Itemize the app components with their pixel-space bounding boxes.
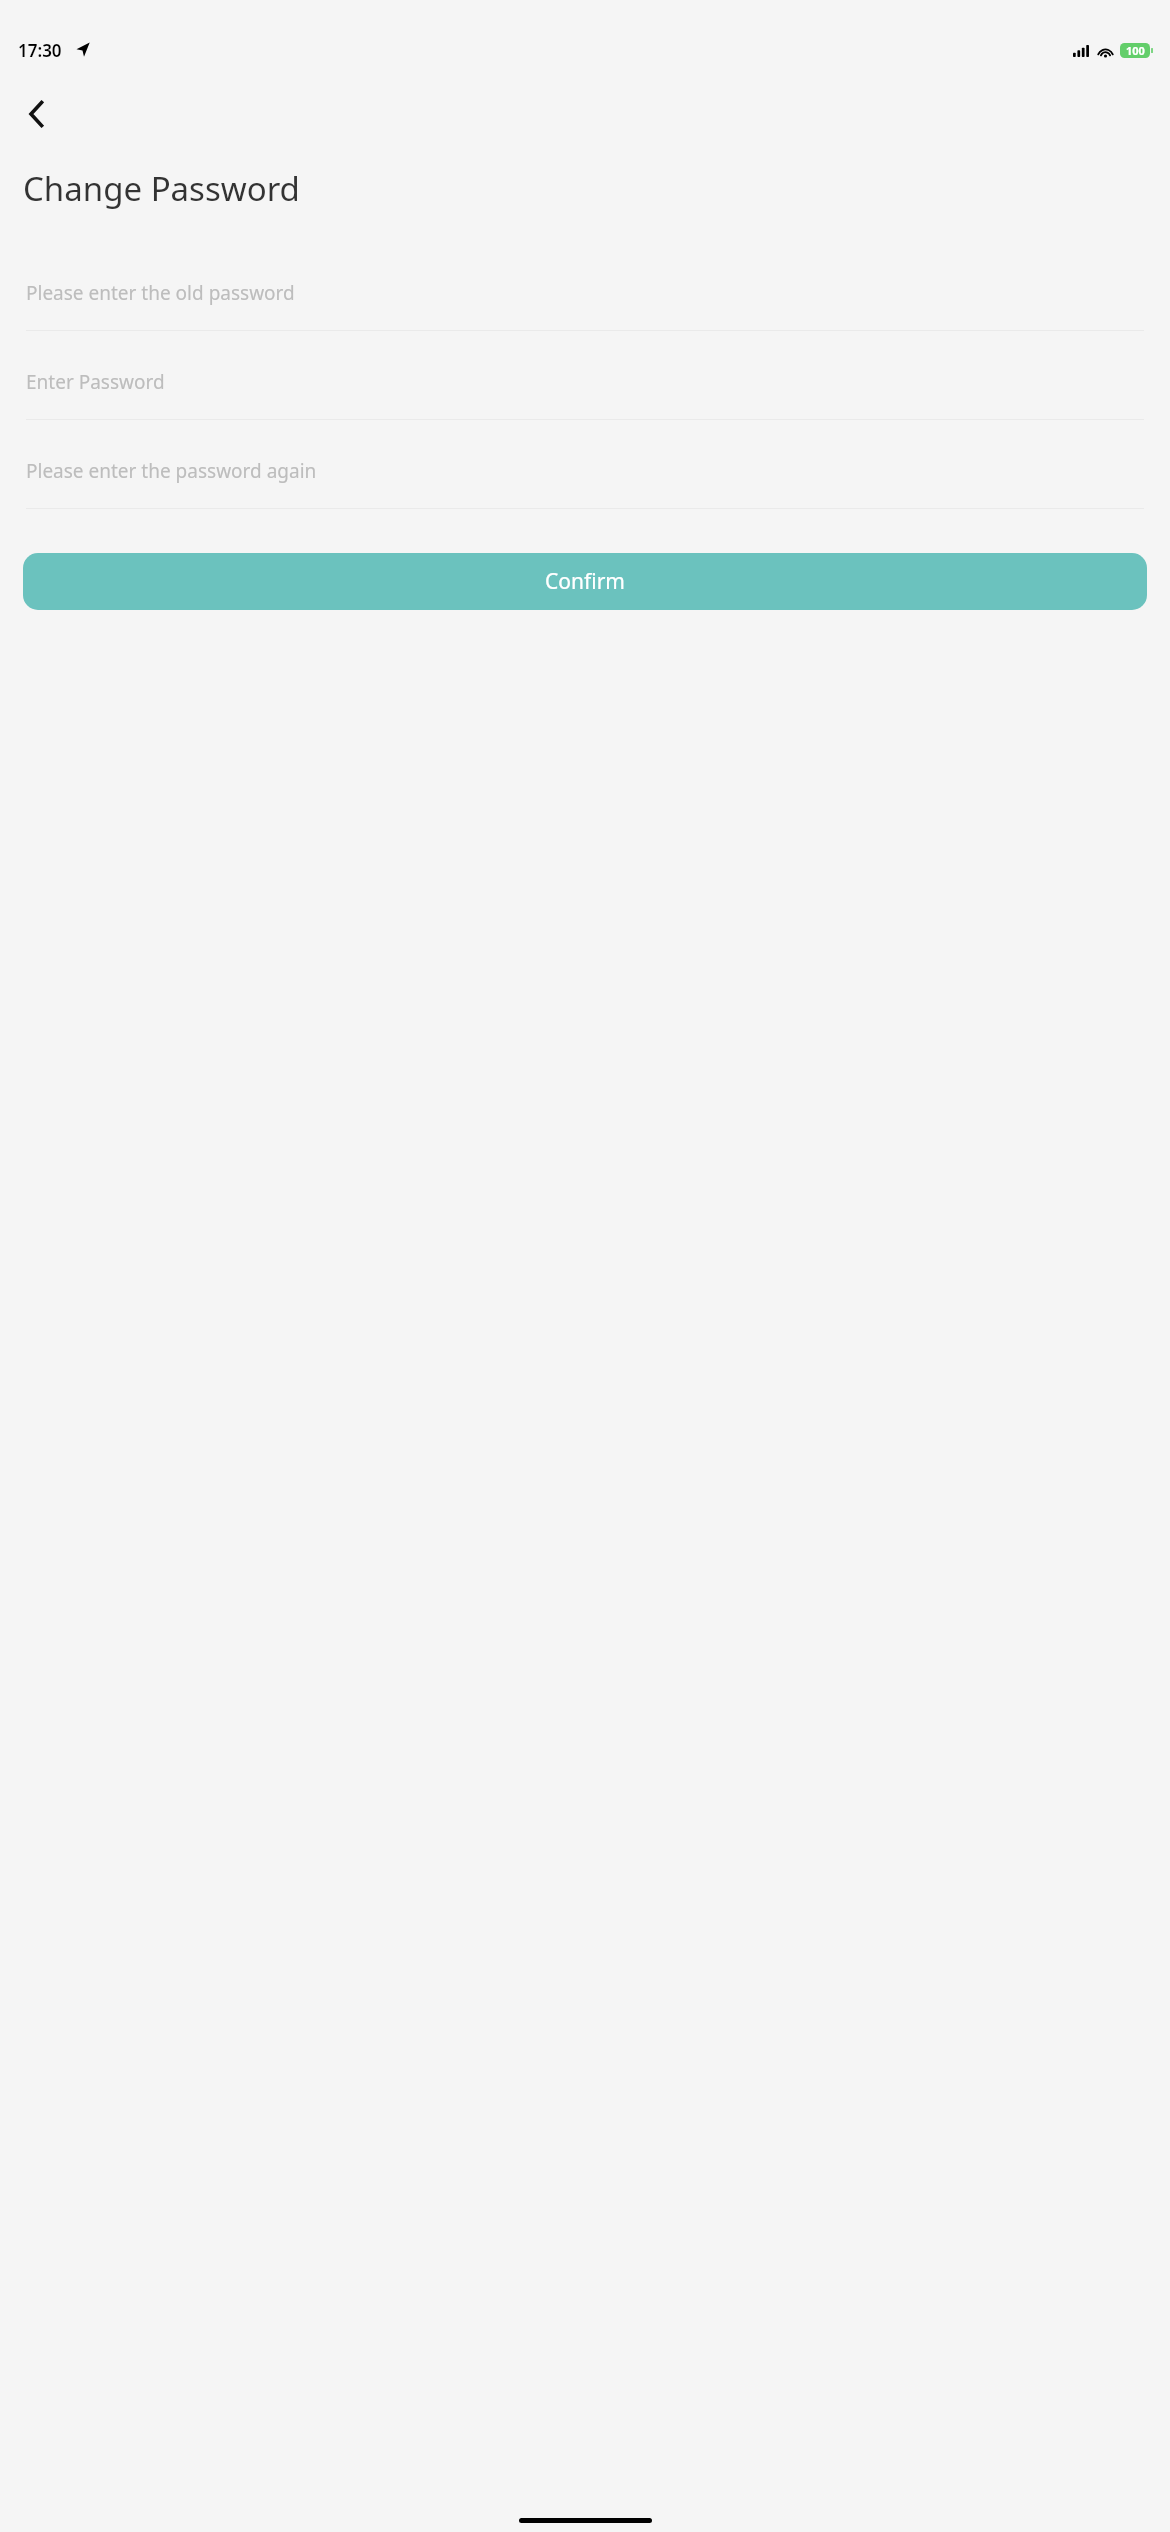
staticText: 100 — [1126, 43, 1145, 58]
button[interactable]: Confirm — [23, 553, 1147, 610]
staticText: 17:30 — [18, 39, 62, 62]
staticText: Enter Password — [26, 369, 165, 395]
button[interactable]: Back — [8, 86, 64, 142]
staticText: Change Password — [23, 166, 300, 211]
staticText: Confirm — [545, 567, 625, 596]
staticText: Please enter the password again — [26, 458, 317, 484]
staticText: Please enter the old password — [26, 280, 295, 306]
button[interactable]: Please enter the old password — [26, 270, 1144, 331]
button[interactable]: Enter Password — [26, 359, 1144, 420]
button[interactable]: Please enter the password again — [26, 448, 1144, 509]
